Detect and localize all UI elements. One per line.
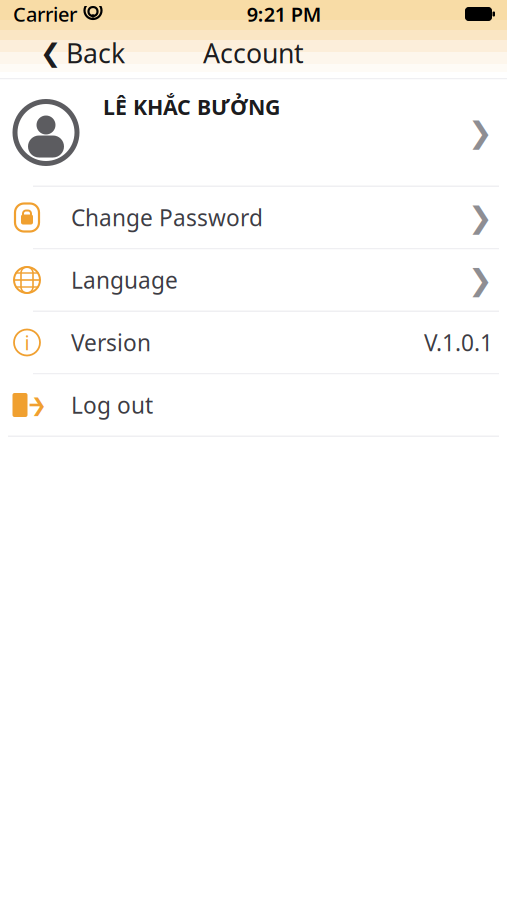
button[interactable]: i [0, 312, 507, 373]
button[interactable]: ❮ [0, 31, 135, 75]
staticText: Back [66, 35, 125, 71]
button[interactable]: Change Password [0, 187, 507, 248]
button[interactable]: ❯ [0, 374, 507, 435]
staticText: Log out [71, 390, 153, 420]
staticText: LÊ KHẮC BƯỞNG [103, 92, 280, 121]
staticText: Change Password [71, 202, 263, 232]
staticText: Version [71, 327, 151, 357]
button[interactable]: LÊ KHẮC BƯỞNG [0, 79, 507, 185]
staticText: ❯ [468, 116, 493, 149]
staticText: i [24, 329, 29, 356]
staticText: V.1.0.1 [424, 327, 493, 357]
staticText: ❯ [468, 201, 493, 234]
staticText: ❯ [31, 394, 47, 416]
staticText: ❮ [40, 39, 61, 67]
staticText: Account [203, 35, 304, 71]
staticText: Carrier [13, 1, 77, 27]
staticText: ❯ [468, 263, 493, 297]
staticText: 9:21 PM [247, 1, 322, 27]
button[interactable]: Language [0, 249, 507, 310]
staticText: Language [71, 265, 178, 295]
